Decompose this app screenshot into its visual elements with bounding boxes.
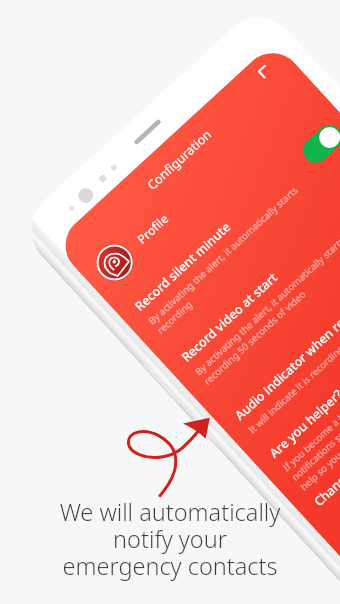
button[interactable]: Record video at start <box>162 160 340 404</box>
staticText: Are you helper? <box>266 385 340 461</box>
staticText: Record video at start <box>178 269 281 365</box>
staticText: By activating the alert, it automaticall… <box>192 234 340 388</box>
button[interactable]: Record silent minute <box>115 109 340 353</box>
button[interactable]: Profile <box>75 65 327 301</box>
staticText: If you become a helper you will receive … <box>280 347 340 493</box>
button[interactable]: Are you helper? <box>250 255 340 510</box>
staticText: Configuration <box>144 126 216 193</box>
staticText: Audio indicator when recording <box>231 284 340 424</box>
button[interactable]: Toggle <box>298 120 340 168</box>
staticText: Profile <box>134 210 172 247</box>
button[interactable]: Audio indicator when recording <box>215 218 340 453</box>
button[interactable]: Change password <box>294 304 340 527</box>
staticText: Record silent minute <box>131 218 234 315</box>
staticText: By activating the alert, it automaticall… <box>145 183 310 337</box>
staticText: Change password <box>310 425 340 510</box>
staticText: We will automatically notify your emerge… <box>0 496 340 582</box>
staticText: It will indicate it is recording <box>245 342 340 436</box>
